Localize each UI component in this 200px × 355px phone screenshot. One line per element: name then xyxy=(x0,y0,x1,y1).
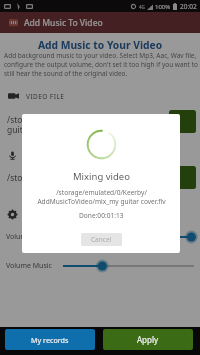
staticText: 4G xyxy=(139,4,145,10)
staticText: Add Music To Video xyxy=(24,17,103,29)
button[interactable]: Apply xyxy=(103,329,193,350)
staticText: Mixing video xyxy=(73,170,130,183)
staticText: Done:00:01:13 xyxy=(79,211,124,220)
staticText: Volume Music xyxy=(6,261,52,271)
staticText: Add background music to your video. Sele… xyxy=(4,51,198,78)
button[interactable]: Volume Music xyxy=(63,259,194,273)
staticText: /storage/emulated/0/Keerby/ AddMusicToVi… xyxy=(37,188,166,206)
staticText: VIDEO FILE xyxy=(26,92,65,101)
staticText: 100% xyxy=(155,3,171,11)
button[interactable]: My records xyxy=(5,329,95,350)
button[interactable]: Cancel xyxy=(81,233,122,246)
staticText: My records xyxy=(31,335,69,345)
staticText: Apply xyxy=(137,334,159,345)
button[interactable]: Select video file xyxy=(169,110,196,133)
staticText: Volume Video xyxy=(6,232,52,242)
button[interactable]: Volume Video xyxy=(63,230,194,244)
staticText: Add Music to Your Video xyxy=(0,38,200,52)
staticText: 20:02 xyxy=(180,2,197,11)
staticText: /storage/emulated/0/Music/song.mp3 xyxy=(7,172,167,184)
staticText: /storage/emulated/0/Keerby/my guitar cov… xyxy=(7,114,167,136)
button[interactable]: Select music file xyxy=(169,166,196,189)
staticText: Cancel xyxy=(91,235,112,244)
